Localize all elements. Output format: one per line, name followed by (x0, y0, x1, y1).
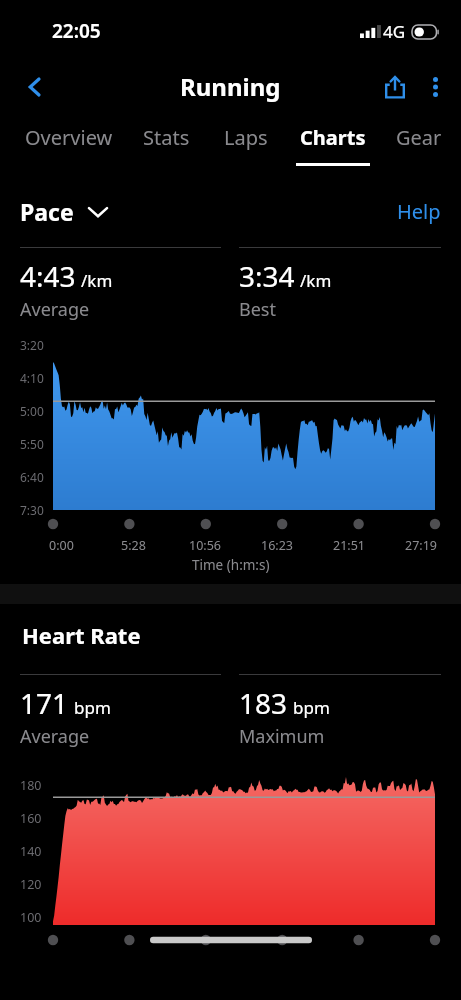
staticText: 5:50 (20, 436, 44, 452)
staticText: bpm (293, 696, 330, 719)
staticText: Laps (224, 124, 268, 151)
staticText: Stats (143, 124, 190, 151)
staticText: 22:05 (52, 18, 101, 44)
staticText: 0:00 (49, 537, 74, 554)
staticText: Charts (300, 124, 366, 151)
button[interactable]: Laps (206, 115, 286, 163)
staticText: Running (180, 70, 281, 103)
staticText: Gear (396, 124, 442, 151)
button[interactable]: Stats (126, 115, 206, 163)
staticText: 21:51 (333, 537, 365, 554)
button[interactable]: Help (397, 198, 441, 225)
staticText: Average (20, 724, 90, 749)
staticText: 100 (20, 909, 42, 926)
staticText: 4G (383, 20, 406, 43)
staticText: 7:30 (20, 502, 44, 518)
staticText: Overview (25, 124, 113, 151)
staticText: 4:43 (20, 257, 76, 295)
staticText: 180 (20, 777, 42, 794)
staticText: 120 (20, 876, 42, 893)
staticText: bpm (74, 696, 111, 719)
staticText: 183 (239, 684, 288, 722)
button[interactable]: Back (14, 66, 56, 108)
staticText: Time (h:m:s) (192, 556, 270, 574)
button[interactable]: Pace (20, 196, 108, 227)
staticText: Best (239, 297, 276, 322)
button[interactable]: Gear (379, 115, 459, 163)
staticText: 171 (20, 684, 69, 722)
staticText: /km (81, 269, 113, 292)
staticText: 5:28 (121, 537, 146, 554)
staticText: 3:20 (20, 337, 44, 353)
button[interactable]: Charts (286, 115, 379, 166)
staticText: 27:19 (405, 537, 437, 554)
staticText: 6:40 (20, 469, 44, 485)
staticText: Pace (20, 196, 74, 227)
staticText: Heart Rate (22, 620, 141, 650)
staticText: 140 (20, 843, 42, 860)
button[interactable]: Share (373, 65, 417, 109)
button[interactable]: Overview (12, 115, 126, 163)
staticText: 4:10 (20, 370, 44, 386)
staticText: 5:00 (20, 403, 44, 419)
staticText: Average (20, 297, 90, 322)
staticText: Maximum (239, 724, 325, 749)
staticText: 3:34 (239, 257, 295, 295)
staticText: 160 (20, 810, 42, 827)
staticText: /km (300, 269, 332, 292)
staticText: 16:23 (261, 537, 293, 554)
button[interactable]: More options (417, 65, 453, 109)
staticText: 10:56 (189, 537, 221, 554)
